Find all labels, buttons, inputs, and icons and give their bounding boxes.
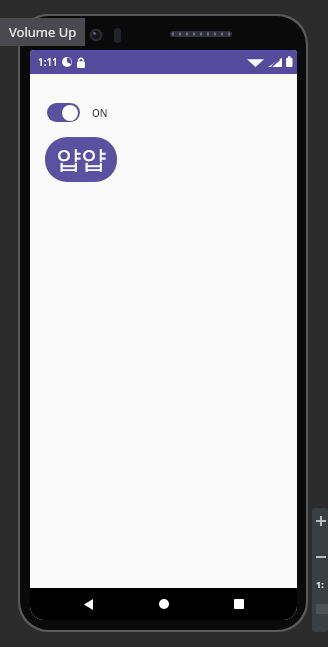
staticText: 얍얍 (56, 144, 106, 175)
button[interactable]: ON (47, 101, 108, 124)
button[interactable]: Home (148, 588, 180, 620)
staticText: Volume Up (9, 23, 77, 41)
staticText: ON (92, 106, 108, 120)
button[interactable]: Back (72, 588, 104, 620)
button[interactable]: Recent apps (223, 588, 255, 620)
button[interactable]: 얍얍 (45, 137, 117, 182)
staticText: 1: (316, 578, 324, 590)
staticText: 1:11 (38, 55, 58, 69)
